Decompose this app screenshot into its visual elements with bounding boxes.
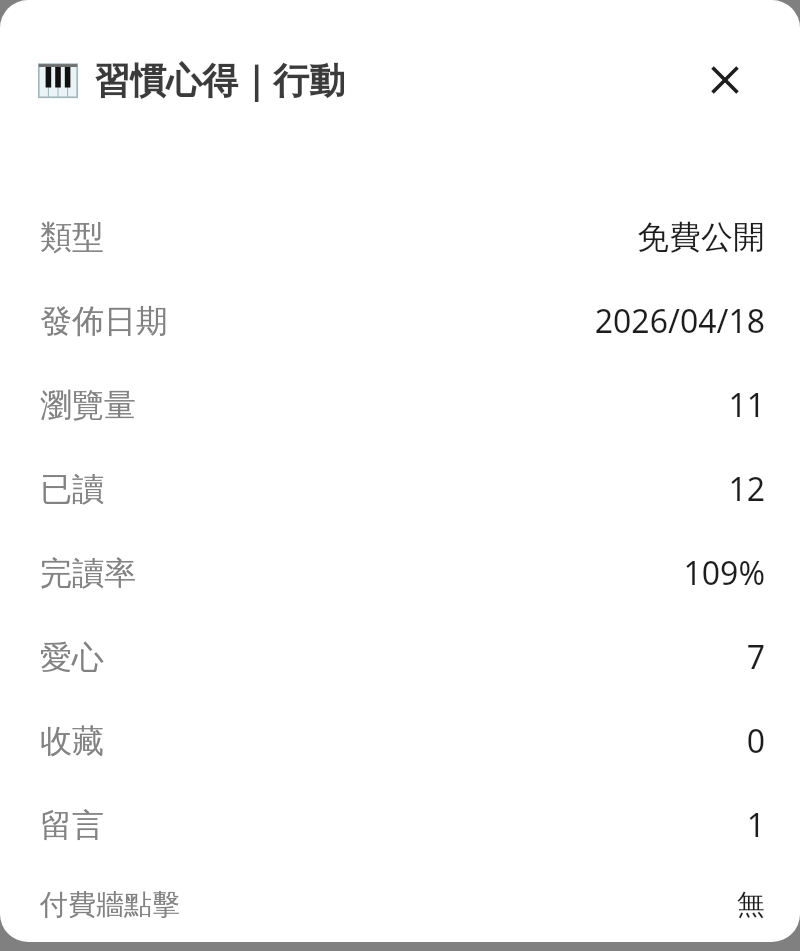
staticText: 發佈日期	[40, 301, 168, 341]
button[interactable]: 收藏	[0, 699, 800, 783]
staticText: 7	[746, 635, 765, 679]
staticText: 瀏覽量	[40, 385, 136, 425]
staticText: 12	[728, 467, 765, 511]
button[interactable]: 瀏覽量	[0, 363, 800, 447]
staticText: 無	[737, 887, 765, 922]
button[interactable]: 發佈日期	[0, 279, 800, 363]
button[interactable]: 完讀率	[0, 531, 800, 615]
staticText: 免費公開	[637, 217, 765, 257]
button[interactable]: Close	[687, 42, 763, 118]
staticText: 0	[746, 719, 765, 763]
button[interactable]: 愛心	[0, 615, 800, 699]
staticText: 完讀率	[40, 553, 136, 593]
button[interactable]: 付費牆點擊	[0, 867, 800, 942]
staticText: 109%	[683, 551, 765, 595]
staticText: 1	[746, 803, 765, 847]
staticText: 收藏	[40, 721, 104, 761]
staticText: 已讀	[40, 469, 104, 509]
staticText: 11	[728, 383, 765, 427]
staticText: 留言	[40, 805, 104, 845]
staticText: 愛心	[40, 637, 104, 677]
staticText: 習慣心得｜行動1-1｜習慣建立小...	[94, 58, 390, 103]
staticText: 類型	[40, 217, 104, 257]
button[interactable]: 已讀	[0, 447, 800, 531]
staticText: 付費牆點擊	[40, 887, 180, 922]
button[interactable]: 留言	[0, 783, 800, 867]
button[interactable]: 類型	[0, 195, 800, 279]
staticText: 2026/04/18	[594, 299, 765, 343]
